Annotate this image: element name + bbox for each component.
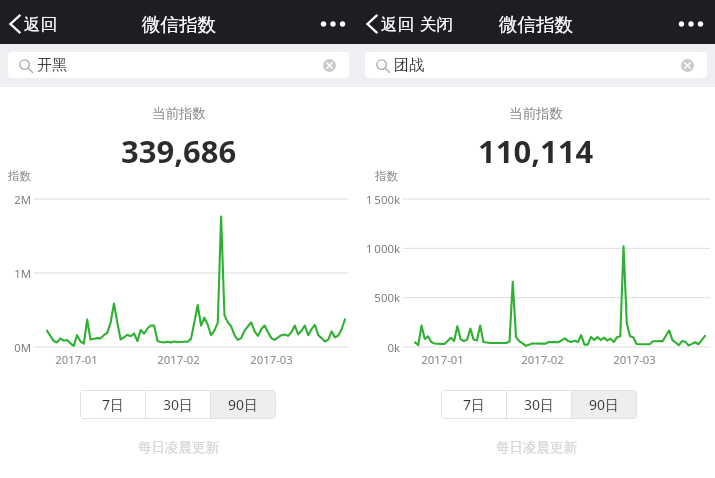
staticText: 开黑 [37, 56, 67, 75]
staticText: 2017-02 [157, 352, 200, 367]
button[interactable]: 7日 [442, 391, 506, 418]
staticText: 2017-02 [521, 352, 564, 367]
staticText: 90日 [228, 395, 259, 414]
button[interactable]: 返回 [9, 2, 57, 46]
button[interactable]: 开黑 [8, 52, 349, 78]
button[interactable]: Clear text [323, 59, 336, 72]
staticText: 2017-03 [613, 352, 656, 367]
staticText: 339,686 [121, 130, 237, 172]
staticText: 2017-01 [55, 352, 98, 367]
button[interactable]: 30日 [507, 391, 571, 418]
button[interactable]: 团战 [365, 52, 707, 78]
button[interactable]: 90日 [572, 391, 636, 418]
staticText: 30日 [163, 395, 194, 414]
staticText: 1M [14, 266, 31, 282]
staticText: 90日 [589, 395, 620, 414]
staticText: 关闭 [420, 14, 453, 35]
staticText: 指数 [375, 169, 398, 183]
staticText: 500k [374, 290, 400, 306]
button[interactable]: Clear text [681, 59, 694, 72]
staticText: 每日凌晨更新 [496, 439, 577, 456]
staticText: 110,114 [478, 130, 594, 172]
staticText: 2017-01 [421, 352, 464, 367]
button[interactable]: 关闭 [420, 2, 453, 46]
button[interactable]: 7日 [81, 391, 145, 418]
staticText: 每日凌晨更新 [138, 439, 219, 456]
staticText: 当前指数 [509, 105, 563, 122]
button[interactable]: 90日 [211, 391, 275, 418]
staticText: 返回 [381, 14, 414, 35]
staticText: 返回 [24, 14, 57, 35]
staticText: 指数 [8, 169, 31, 183]
button[interactable]: 返回 [366, 2, 414, 46]
staticText: 1 000k [365, 241, 400, 257]
staticText: 微信指数 [142, 13, 216, 36]
button[interactable]: 30日 [146, 391, 210, 418]
staticText: 30日 [524, 395, 555, 414]
staticText: 当前指数 [152, 105, 206, 122]
button[interactable]: More options [316, 9, 350, 39]
staticText: 团战 [394, 56, 424, 75]
staticText: 微信指数 [499, 13, 573, 36]
button[interactable]: More options [674, 9, 708, 39]
staticText: 1 500k [365, 192, 400, 208]
staticText: 0M [14, 340, 31, 356]
staticText: 7日 [463, 395, 486, 414]
staticText: 0k [387, 340, 400, 356]
staticText: 2M [14, 192, 31, 208]
staticText: 7日 [102, 395, 125, 414]
staticText: 2017-03 [250, 352, 293, 367]
